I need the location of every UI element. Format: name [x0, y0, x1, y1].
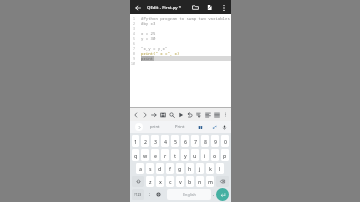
button[interactable]: Save file — [204, 2, 215, 13]
button[interactable]: More suggestions — [135, 123, 143, 131]
button[interactable]: b — [186, 176, 194, 187]
staticText: y = 30 — [141, 36, 156, 41]
button[interactable]: m — [206, 176, 214, 187]
staticText: j — [199, 165, 201, 172]
staticText: 4 — [164, 138, 167, 145]
button[interactable]: Print — [168, 121, 192, 133]
staticText: 9 — [214, 138, 217, 145]
button[interactable]: y — [181, 149, 189, 161]
staticText: v — [179, 178, 182, 185]
button[interactable]: 9 — [211, 135, 219, 147]
staticText: 6 — [133, 42, 135, 46]
button[interactable]: c — [166, 176, 174, 187]
button[interactable]: i — [201, 149, 209, 161]
button[interactable]: Run — [176, 110, 185, 119]
staticText: u — [193, 152, 197, 159]
button[interactable]: 1 — [132, 135, 139, 147]
button[interactable]: 4 — [161, 135, 169, 147]
button[interactable]: t — [171, 149, 179, 161]
staticText: 0 — [224, 138, 227, 145]
button[interactable]: v — [176, 176, 184, 187]
button[interactable]: w — [141, 149, 149, 161]
staticText: 3 — [154, 138, 157, 145]
staticText: 1 — [133, 17, 135, 21]
staticText: p — [223, 152, 227, 159]
button[interactable]: r — [161, 149, 169, 161]
button[interactable]: Redo — [194, 110, 203, 119]
button[interactable]: a — [136, 163, 144, 174]
button[interactable]: Previous — [131, 110, 140, 119]
staticText: c — [169, 178, 172, 185]
button[interactable]: n — [196, 176, 204, 187]
button[interactable]: e — [151, 149, 159, 161]
button[interactable]: Indent — [149, 110, 158, 119]
staticText: x — [159, 178, 162, 185]
button[interactable]: QEdit - First.py * — [147, 4, 182, 10]
button[interactable]: k — [206, 163, 214, 174]
button[interactable]: Stickers — [210, 123, 218, 131]
button[interactable]: z — [146, 176, 154, 187]
staticText: z — [149, 178, 152, 185]
button[interactable]: 8 — [201, 135, 209, 147]
button[interactable]: Enter — [216, 188, 229, 201]
button[interactable]: Format — [203, 110, 212, 119]
staticText: Print — [175, 124, 185, 130]
button[interactable]: Search — [167, 110, 176, 119]
button[interactable]: f — [166, 163, 174, 174]
staticText: w — [143, 152, 148, 159]
button[interactable]: d — [156, 163, 164, 174]
button[interactable]: English — [167, 189, 211, 200]
staticText: o — [213, 152, 217, 159]
button[interactable]: l — [216, 163, 224, 174]
staticText: l — [219, 165, 221, 172]
staticText: 3 — [133, 27, 135, 31]
button[interactable]: q — [132, 149, 139, 161]
staticText: r — [164, 152, 167, 159]
button[interactable]: h — [186, 163, 194, 174]
button[interactable]: ?123 — [132, 189, 144, 200]
button[interactable]: More — [221, 110, 230, 119]
button[interactable]: Open folder — [190, 2, 201, 13]
button[interactable]: Navigate up — [132, 2, 143, 13]
button[interactable]: Next — [140, 110, 149, 119]
staticText: 7 — [133, 47, 135, 51]
staticText: y — [184, 152, 187, 159]
staticText: 8 — [204, 138, 207, 145]
staticText: k — [209, 165, 212, 172]
button[interactable]: g — [176, 163, 184, 174]
button[interactable]: Save — [158, 110, 167, 119]
button[interactable]: u — [191, 149, 199, 161]
button[interactable]: 7 — [191, 135, 199, 147]
button[interactable]: print — [143, 121, 167, 133]
button[interactable]: 2 — [141, 135, 149, 147]
button[interactable]: Emoji — [145, 188, 153, 201]
button[interactable]: p — [221, 149, 229, 161]
staticText: print — [141, 56, 153, 61]
button[interactable]: j — [196, 163, 204, 174]
button[interactable]: Keyboard settings — [154, 188, 163, 201]
button[interactable]: Voice input — [220, 123, 228, 131]
staticText: f — [169, 165, 171, 172]
button[interactable]: More options — [218, 2, 229, 13]
button[interactable]: 3 — [151, 135, 159, 147]
staticText: 7 — [194, 138, 197, 145]
staticText: i — [204, 152, 206, 159]
button[interactable]: Shift — [132, 176, 144, 187]
button[interactable]: Clipboard — [196, 123, 204, 131]
staticText: print(" x =", x) — [141, 51, 180, 56]
button[interactable]: 6 — [181, 135, 189, 147]
button[interactable]: 5 — [171, 135, 179, 147]
staticText: d — [158, 165, 162, 172]
button[interactable]: Undo — [185, 110, 194, 119]
button[interactable]: Wrap lines — [212, 110, 221, 119]
staticText: e — [154, 152, 157, 159]
button[interactable]: Backspace — [216, 176, 229, 187]
staticText: 2 — [133, 22, 135, 26]
button[interactable]: x — [156, 176, 164, 187]
staticText: 2 — [144, 138, 147, 145]
staticText: 6 — [184, 138, 187, 145]
button[interactable]: Period — [210, 188, 216, 201]
button[interactable]: 0 — [221, 135, 229, 147]
button[interactable]: o — [211, 149, 219, 161]
button[interactable]: s — [146, 163, 154, 174]
